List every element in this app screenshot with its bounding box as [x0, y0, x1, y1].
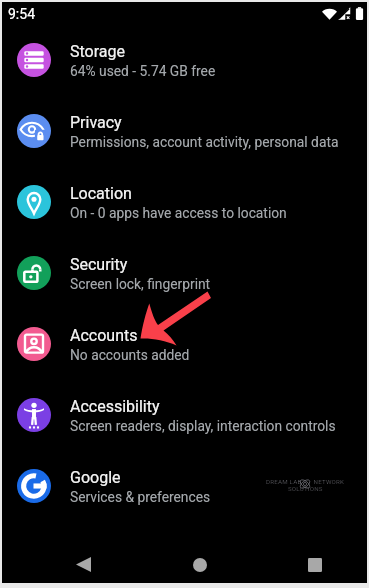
button[interactable]: Back — [61, 542, 106, 587]
staticText: Storage — [70, 42, 125, 61]
staticText: Accessibility — [70, 397, 160, 416]
staticText: SOLUTIONS — [288, 485, 323, 492]
button[interactable]: Security — [2, 240, 367, 306]
staticText: Accounts — [70, 326, 138, 345]
button[interactable]: Accessibility — [2, 382, 367, 448]
staticText: No accounts added — [70, 347, 190, 363]
button[interactable]: Location — [2, 169, 367, 235]
staticText: Google — [70, 468, 121, 487]
staticText: Location — [70, 184, 132, 203]
button[interactable]: Home — [177, 542, 222, 587]
button[interactable]: Privacy — [2, 98, 367, 164]
staticText: Services & preferences — [70, 489, 211, 505]
button[interactable]: Accounts — [2, 311, 367, 377]
staticText: 64% used - 5.74 GB free — [70, 63, 216, 79]
staticText: Screen lock, fingerprint — [70, 276, 211, 292]
button[interactable]: Google — [2, 453, 367, 519]
button[interactable]: Storage — [2, 27, 367, 93]
staticText: 9:54 — [8, 6, 35, 22]
staticText: Screen readers, display, interaction con… — [70, 418, 336, 434]
staticText: Security — [70, 255, 128, 274]
button[interactable]: Recent apps — [292, 542, 337, 587]
staticText: Privacy — [70, 113, 122, 132]
staticText: DREAM LAB NETWORK — [266, 478, 345, 485]
staticText: On - 0 apps have access to location — [70, 205, 287, 221]
staticText: Permissions, account activity, personal … — [70, 134, 339, 150]
